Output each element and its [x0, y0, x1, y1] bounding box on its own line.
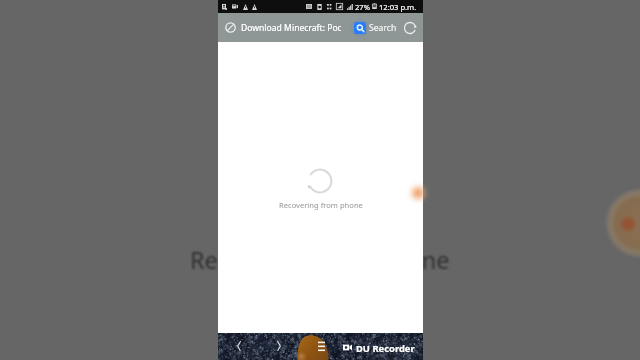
- button[interactable]: Site settings: [225, 22, 236, 33]
- staticText: Recovering from phone: [279, 200, 363, 210]
- staticText: Recovering from phone: [190, 244, 450, 276]
- staticText: Download Minecraft: Pocket: [241, 22, 341, 34]
- staticText: 27%: [355, 2, 370, 12]
- button[interactable]: Menu: [312, 337, 330, 355]
- staticText: Search: [369, 22, 397, 34]
- button[interactable]: Forward: [270, 337, 288, 355]
- staticText: 12:03 p.m.: [379, 2, 417, 12]
- staticText: DU Recorder: [356, 342, 415, 355]
- button[interactable]: Search: [354, 22, 397, 34]
- button[interactable]: Back: [230, 337, 248, 355]
- button[interactable]: Refresh: [403, 21, 417, 35]
